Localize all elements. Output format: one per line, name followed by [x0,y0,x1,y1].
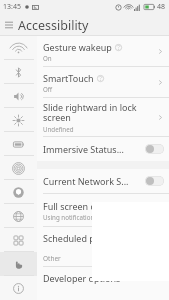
staticText: 13:45 [3,2,21,12]
button[interactable]: Slide rightward in lock screen [37,98,169,136]
button[interactable]: Immersive Status... toggle [145,144,164,154]
button[interactable]: Current Network S... toggle [145,176,164,186]
button[interactable]: BATTERY [0,132,37,156]
staticText: Undefined [43,125,74,133]
staticText: Using notification bar in multi-task [43,213,144,221]
button[interactable]: Current Network S... [37,169,169,193]
button[interactable]: INFO [0,276,37,300]
staticText: Scheduled power on/off [43,232,145,244]
staticText: Gesture wakeup [43,41,112,53]
button[interactable]: SmartTouch [37,67,169,97]
button[interactable]: GLOBE [0,204,37,228]
button[interactable]: FINGER [0,156,37,180]
button[interactable]: BT [0,60,37,84]
staticText: Developer options [43,272,121,284]
button[interactable]: SOUND [0,84,37,108]
button[interactable]: Full screen display [37,194,169,226]
button[interactable]: WIFI [0,36,37,60]
button[interactable]: GRID [0,228,37,252]
button[interactable]: BRIGHT [0,108,37,132]
staticText: Off [43,85,53,93]
staticText: Current Network S... [43,175,141,187]
staticText: 48 [157,2,166,12]
staticText: On [43,54,52,62]
staticText: Accessibility [18,17,89,34]
button[interactable]: Gesture wakeup [37,36,169,66]
button[interactable]: Developer options [37,267,169,289]
staticText: Full screen display [43,200,121,212]
button[interactable]: Scheduled power on/off [37,227,169,249]
staticText: Immersive Status... [43,143,141,155]
staticText: SmartTouch [43,72,94,84]
button[interactable]: LOCATION [0,180,37,204]
staticText: Slide rightward in lock screen [43,101,154,124]
button[interactable]: Menu [0,16,18,34]
staticText: Other [43,254,61,263]
button[interactable]: Immersive Status... [37,137,169,161]
button[interactable]: HAND [0,252,37,276]
